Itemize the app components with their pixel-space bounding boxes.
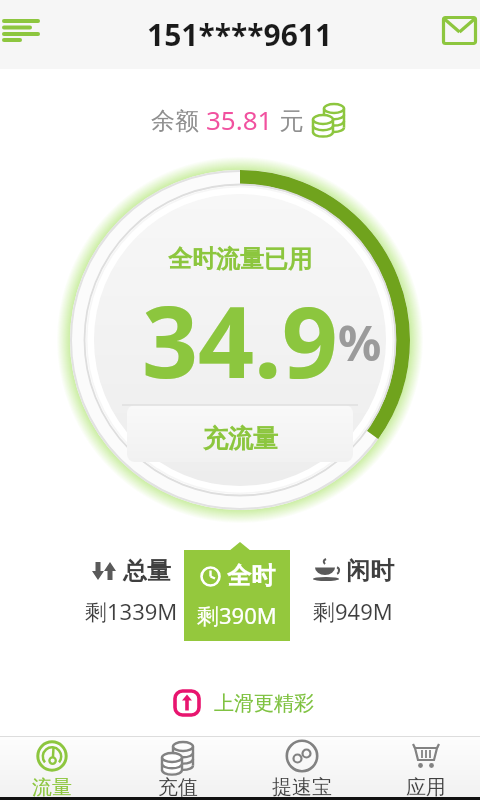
staticText: 剩390M [197, 600, 277, 630]
staticText: 应用 [406, 775, 446, 800]
button[interactable]: 余额 [8, 95, 480, 143]
staticText: 上滑更精彩 [214, 691, 314, 716]
staticText: 闲时 [346, 556, 394, 586]
staticText: 充值 [158, 775, 198, 800]
button[interactable]: 充流量 [203, 423, 278, 454]
button[interactable] [4, 19, 40, 43]
button[interactable]: 全时 [184, 550, 290, 641]
button[interactable]: 应用 [360, 737, 480, 797]
staticText: 剩1339M [85, 596, 178, 626]
staticText: 流量 [32, 775, 72, 800]
button[interactable]: 流量 [0, 737, 120, 797]
button[interactable]: 闲时 [288, 556, 418, 626]
staticText: % [338, 310, 382, 375]
button[interactable]: 上滑更精彩 [3, 687, 480, 719]
staticText: 余额 [151, 103, 206, 136]
staticText: 元 [273, 103, 304, 136]
button[interactable]: 总量 [66, 556, 196, 626]
button[interactable]: 提速宝 [240, 737, 360, 797]
button[interactable]: 充值 [120, 737, 240, 797]
staticText: 全时 [227, 561, 275, 591]
staticText: 35.81 [206, 102, 273, 137]
staticText: 34.9 [142, 273, 338, 393]
staticText: 151****9611 [147, 14, 333, 55]
staticText: 总量 [123, 556, 171, 586]
staticText: 提速宝 [272, 775, 332, 800]
button[interactable] [442, 16, 477, 45]
staticText: 剩949M [313, 596, 393, 626]
staticText: 全时流量已用 [168, 244, 312, 274]
